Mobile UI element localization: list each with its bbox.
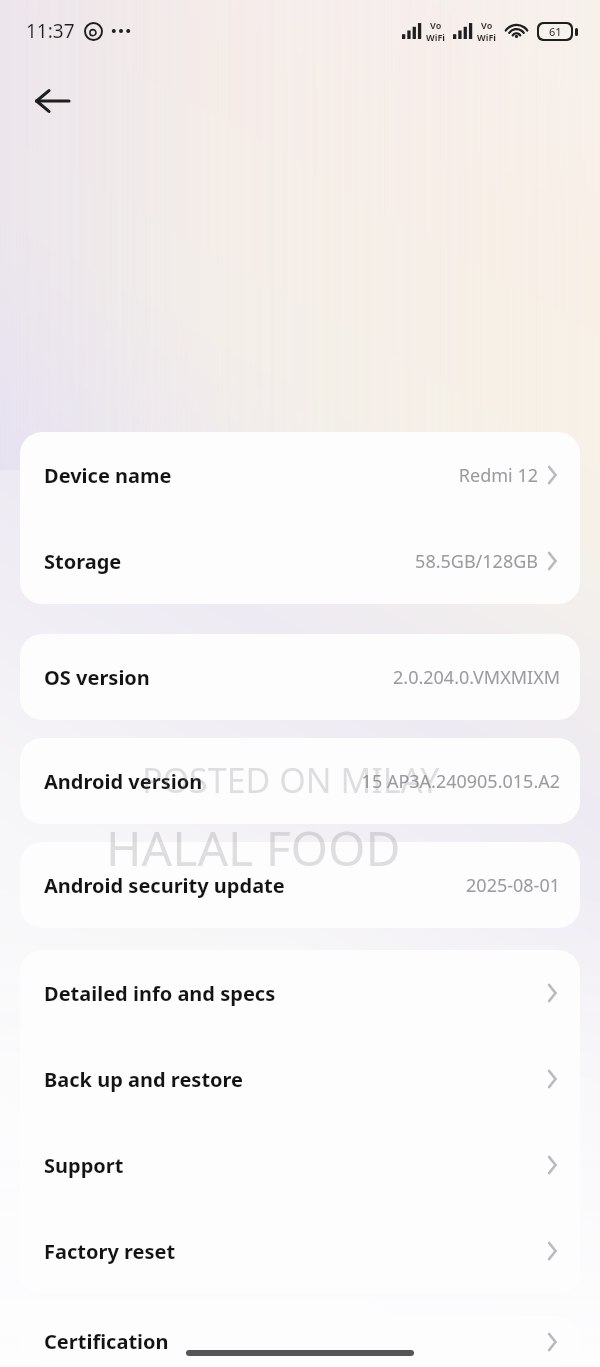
staticText: 11:37: [26, 18, 75, 44]
button[interactable]: Certification: [20, 1316, 580, 1367]
staticText: 58.5GB/128GB: [415, 549, 538, 574]
staticText: Vo: [481, 19, 493, 31]
staticText: Vo: [430, 19, 442, 31]
button[interactable]: Factory reset: [20, 1208, 580, 1294]
staticText: Device name: [44, 462, 172, 489]
staticText: WiFi: [426, 31, 446, 43]
staticText: HALAL FOOD: [106, 815, 401, 880]
staticText: Certification: [44, 1328, 169, 1355]
button[interactable]: Storage: [20, 518, 580, 604]
staticText: Redmi 12: [458, 463, 538, 488]
staticText: 61: [549, 24, 562, 39]
staticText: Factory reset: [44, 1238, 176, 1265]
staticText: Detailed info and specs: [44, 980, 276, 1007]
staticText: Android security update: [44, 872, 285, 899]
button[interactable]: Device name: [20, 432, 580, 518]
staticText: Android version: [44, 768, 203, 795]
staticText: Storage: [44, 548, 122, 575]
staticText: POSTED ON MILAY: [142, 757, 440, 803]
staticText: OS version: [44, 664, 150, 691]
button[interactable]: Support: [20, 1122, 580, 1208]
button[interactable]: Android version: [20, 738, 580, 824]
staticText: Back up and restore: [44, 1066, 244, 1093]
button[interactable]: Android security update: [20, 842, 580, 928]
button[interactable]: OS version: [20, 634, 580, 720]
button[interactable]: Back up and restore: [20, 1036, 580, 1122]
staticText: Support: [44, 1152, 124, 1179]
button[interactable]: Detailed info and specs: [20, 950, 580, 1036]
staticText: 2025-08-01: [466, 873, 560, 898]
staticText: WiFi: [477, 31, 497, 43]
staticText: 15 AP3A.240905.015.A2: [361, 769, 560, 794]
staticText: 2.0.204.0.VMXMIXM: [393, 665, 560, 690]
button[interactable]: Back: [28, 77, 76, 125]
